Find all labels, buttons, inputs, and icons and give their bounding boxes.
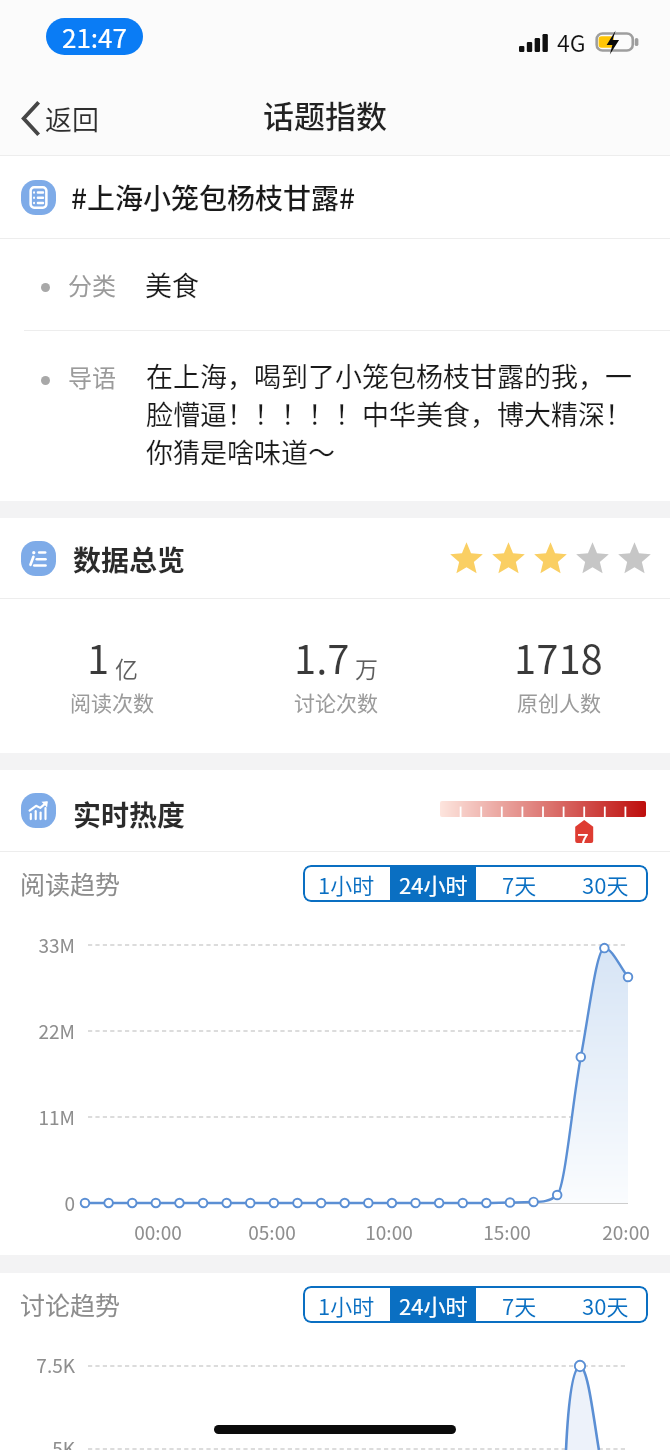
staticText: 7天 — [502, 1289, 537, 1321]
staticText: #上海小笼包杨枝甘露# — [71, 177, 355, 218]
staticText: 33M — [2, 931, 75, 959]
staticText: 30天 — [582, 1289, 629, 1321]
button[interactable]: 1小时 — [303, 865, 390, 902]
staticText: 1 — [87, 628, 110, 686]
staticText: 导语 — [68, 359, 116, 394]
staticText: 1.7 — [294, 628, 350, 686]
staticText: 30天 — [582, 868, 629, 900]
staticText: 0 — [2, 1189, 75, 1217]
staticText: 1小时 — [318, 1289, 375, 1321]
staticText: 讨论次数 — [294, 687, 378, 717]
staticText: 话题指数 — [263, 92, 387, 137]
staticText: 21:47 — [62, 18, 127, 55]
staticText: 10:00 — [344, 1218, 434, 1246]
button[interactable]: 30天 — [562, 1286, 648, 1323]
staticText: 05:00 — [227, 1218, 317, 1246]
staticText: 20:00 — [581, 1218, 670, 1246]
staticText: 11M — [2, 1103, 75, 1131]
staticText: 分类 — [68, 267, 116, 302]
staticText: 美食 — [145, 265, 199, 304]
staticText: 亿 — [115, 651, 138, 684]
button[interactable]: 24小时 — [390, 1286, 476, 1323]
staticText: 万 — [355, 651, 378, 684]
button[interactable]: 1小时 — [303, 1286, 390, 1323]
button[interactable]: 返回 — [0, 88, 117, 145]
staticText: 讨论趋势 — [20, 1286, 121, 1322]
staticText: 7.5K — [2, 1351, 75, 1379]
staticText: 5K — [2, 1434, 75, 1450]
staticText: 1718 — [514, 628, 603, 686]
staticText: 返回 — [45, 99, 99, 138]
staticText: 7天 — [502, 868, 537, 900]
button[interactable]: 24小时 — [390, 865, 476, 902]
staticText: 4G — [557, 25, 586, 58]
staticText: 实时热度 — [73, 794, 186, 835]
staticText: 22M — [2, 1017, 75, 1045]
staticText: 24小时 — [399, 868, 468, 900]
staticText: 00:00 — [113, 1218, 203, 1246]
staticText: 阅读趋势 — [20, 865, 121, 901]
staticText: 15:00 — [462, 1218, 552, 1246]
staticText: 阅读次数 — [70, 687, 154, 717]
staticText: 在上海，喝到了小笼包杨枝甘露的我，一脸懵逼！！！！！中华美食，博大精深！你猜是啥… — [146, 356, 648, 471]
staticText: 数据总览 — [73, 539, 186, 580]
button[interactable]: 7天 — [476, 1286, 562, 1323]
staticText: 24小时 — [399, 1289, 468, 1321]
staticText: 原创人数 — [517, 687, 601, 717]
staticText: 1小时 — [318, 868, 375, 900]
staticText: 7 — [577, 826, 589, 856]
button[interactable]: 7天 — [476, 865, 562, 902]
button[interactable]: 30天 — [562, 865, 648, 902]
